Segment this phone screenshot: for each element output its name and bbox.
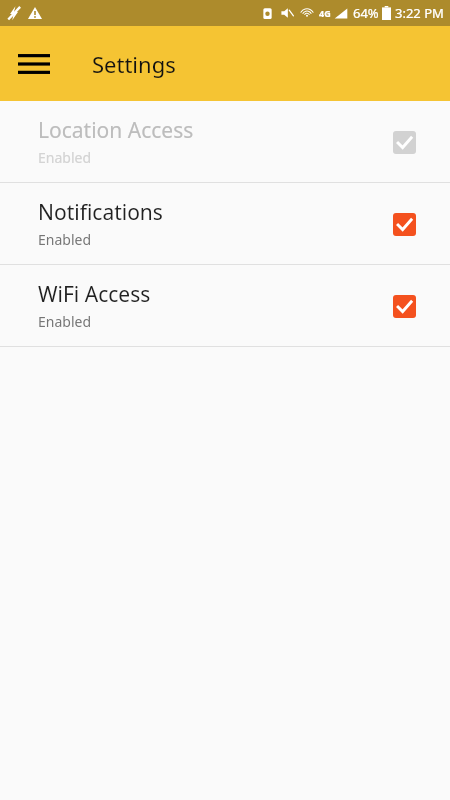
staticText: 3:22 PM xyxy=(395,4,444,22)
staticText: Notifications xyxy=(38,198,163,227)
staticText: Enabled xyxy=(38,312,92,331)
staticText: 4G xyxy=(319,7,331,19)
staticText: Enabled xyxy=(38,230,92,249)
button[interactable]: WiFi Access xyxy=(0,265,450,346)
button[interactable]: Location Access xyxy=(0,101,450,182)
button[interactable]: Checked, disabled xyxy=(384,122,424,162)
button[interactable]: Checked xyxy=(384,204,424,244)
staticText: 64% xyxy=(353,4,379,22)
staticText: Location Access xyxy=(38,116,194,145)
button[interactable]: Notifications xyxy=(0,183,450,264)
staticText: Settings xyxy=(92,49,176,79)
staticText: WiFi Access xyxy=(38,280,151,309)
button[interactable]: Open navigation menu xyxy=(10,40,58,88)
staticText: Enabled xyxy=(38,148,92,167)
button[interactable]: Checked xyxy=(384,286,424,326)
